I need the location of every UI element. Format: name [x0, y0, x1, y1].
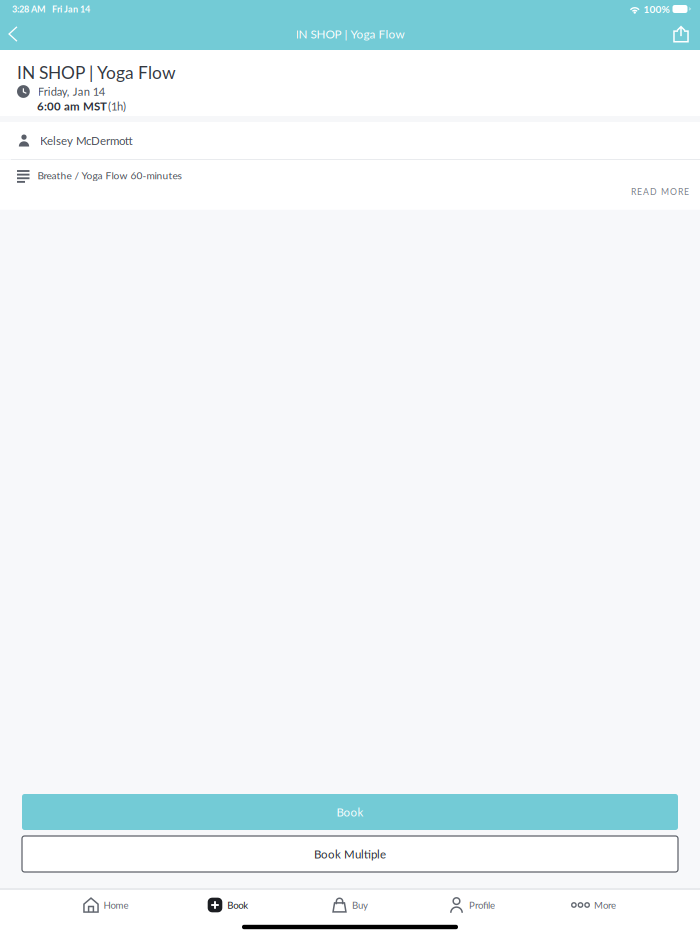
staticText: More [594, 899, 616, 911]
button[interactable]: More [533, 890, 655, 920]
button[interactable]: Share [666, 18, 696, 50]
button[interactable]: Home [45, 890, 167, 920]
staticText: IN SHOP | Yoga Flow [295, 27, 404, 41]
staticText: Breathe / Yoga Flow 60-minutes [37, 169, 181, 181]
staticText: 100% [643, 3, 669, 15]
staticText: IN SHOP | Yoga Flow [17, 62, 176, 83]
button[interactable]: Book [22, 794, 678, 830]
staticText: Book [336, 805, 363, 819]
button[interactable]: Book [167, 890, 289, 920]
button[interactable]: Back [0, 18, 26, 50]
button[interactable]: Profile [411, 890, 533, 920]
staticText: (1h) [108, 99, 126, 113]
staticText: Home [103, 899, 128, 911]
button[interactable]: Buy [289, 890, 411, 920]
staticText: Kelsey McDermott [40, 134, 133, 147]
staticText: 3:28 AM [12, 4, 46, 14]
button[interactable]: Book Multiple [22, 836, 678, 872]
staticText: Book [227, 899, 248, 911]
staticText: Buy [352, 899, 368, 911]
staticText: Book Multiple [314, 847, 386, 861]
staticText: Fri Jan 14 [52, 4, 90, 14]
staticText: R E A D M O R E [631, 186, 689, 197]
staticText: Friday, Jan 14 [38, 85, 105, 98]
staticText: Profile [469, 899, 495, 911]
staticText: 6:00 am MST [37, 99, 107, 113]
button[interactable]: R E A D M O R E [631, 186, 689, 197]
